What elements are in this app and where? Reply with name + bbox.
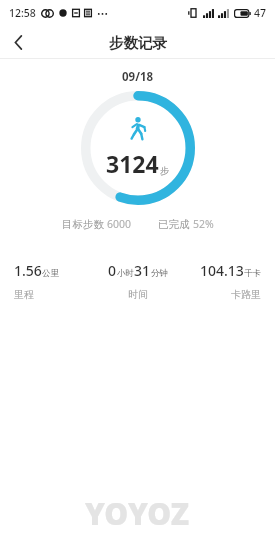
staticText: 里程 xyxy=(14,288,34,301)
staticText: 小时 xyxy=(117,268,134,279)
staticText: 47 xyxy=(254,6,267,20)
staticText: 步数记录 xyxy=(109,34,167,52)
staticText: 1.56 xyxy=(14,261,42,280)
staticText: 时间 xyxy=(128,288,148,301)
button[interactable]: 0 xyxy=(93,261,183,301)
staticText: 3124 xyxy=(106,148,159,179)
button[interactable]: Back xyxy=(0,26,36,59)
staticText: 104.13 xyxy=(200,261,244,280)
staticText: 0 xyxy=(108,261,117,280)
staticText: 12:58 xyxy=(9,6,36,20)
staticText: 目标步数 xyxy=(62,218,104,231)
staticText: 52% xyxy=(193,217,214,231)
button[interactable]: 104.13 xyxy=(183,261,261,301)
staticText: YOYOZ xyxy=(85,493,190,534)
staticText: 09/18 xyxy=(122,69,154,85)
staticText: 31 xyxy=(134,261,151,280)
button[interactable]: 1.56 xyxy=(14,261,93,301)
staticText: 分钟 xyxy=(151,268,168,279)
staticText: 步 xyxy=(160,165,170,177)
staticText: 公里 xyxy=(42,268,59,279)
staticText: 卡路里 xyxy=(231,288,261,301)
staticText: 千卡 xyxy=(244,268,261,279)
staticText: 6000 xyxy=(107,217,132,231)
staticText: 已完成 xyxy=(158,218,190,231)
